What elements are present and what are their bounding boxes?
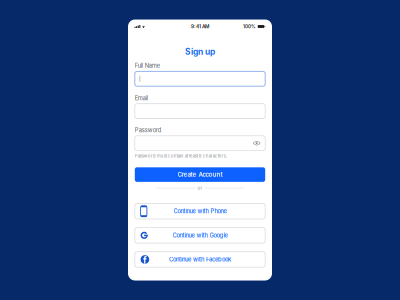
staticText: 9:41 AM: [191, 24, 209, 29]
staticText: Create Account: [177, 171, 222, 178]
button[interactable]: Continue with Google: [135, 228, 265, 243]
staticText: Email: [135, 95, 148, 101]
staticText: or: [197, 185, 202, 191]
button[interactable]: Continue with Facebook: [135, 252, 265, 267]
staticText: 100%: [243, 24, 256, 29]
staticText: Password must contain at least 8 charact…: [135, 153, 227, 159]
button[interactable]: Create Account: [135, 167, 265, 182]
staticText: Sign up: [185, 47, 215, 57]
staticText: Continue with Google: [172, 232, 227, 239]
staticText: Continue with Phone: [173, 208, 226, 215]
button[interactable]: Continue with Phone: [135, 203, 265, 219]
staticText: Password: [135, 127, 162, 134]
staticText: Full Name: [135, 62, 160, 69]
staticText: Continue with Facebook: [169, 256, 231, 263]
